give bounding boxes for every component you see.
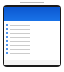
button[interactable] xyxy=(4,31,60,35)
button[interactable] xyxy=(4,35,60,39)
button[interactable] xyxy=(4,51,60,55)
button[interactable] xyxy=(4,47,60,51)
button[interactable] xyxy=(4,27,60,31)
button[interactable] xyxy=(4,39,60,43)
button[interactable] xyxy=(4,23,60,27)
button[interactable] xyxy=(4,43,60,47)
